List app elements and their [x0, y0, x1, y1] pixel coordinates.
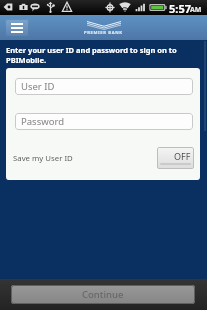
button[interactable]: User ID [15, 78, 193, 95]
button[interactable]: Menu [5, 19, 29, 37]
staticText: Continue [82, 288, 124, 301]
button[interactable]: Password [15, 113, 193, 130]
button[interactable]: Save my User ID switch, off [157, 147, 194, 169]
staticText: Enter your user ID and password to sign … [6, 45, 199, 65]
button[interactable]: Continue [11, 285, 195, 304]
staticText: OFF [174, 150, 191, 162]
staticText: Password [21, 115, 64, 128]
staticText: User ID [21, 80, 55, 93]
staticText: 5:57 [169, 1, 191, 16]
staticText: PREMIER BANK [84, 30, 123, 36]
staticText: Save my User ID [13, 153, 73, 164]
staticText: AM [190, 5, 202, 15]
